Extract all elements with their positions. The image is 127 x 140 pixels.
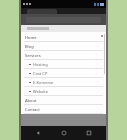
button[interactable]: Blog [21,42,106,51]
staticText: Blog [25,44,34,49]
button[interactable]: Recents [80,126,98,140]
button[interactable]: Back [29,126,47,140]
staticText: About [25,98,37,103]
button[interactable]: Home [55,126,73,140]
staticText: Contact [25,107,40,112]
staticText: Services [25,53,41,58]
button[interactable]: Home [21,32,106,42]
staticText: Cost CP [33,71,48,76]
button[interactable]: Services [21,51,106,60]
staticText: E-Komerse [33,80,54,85]
staticText: Hosting [33,62,48,67]
button[interactable]: Website [21,87,106,96]
button[interactable]: Cost CP [21,69,106,78]
button[interactable]: Contact [21,105,106,114]
staticText: Website [33,89,49,94]
button[interactable]: E-Komerse [21,78,106,87]
staticText: Home [25,35,37,40]
button[interactable]: About [21,96,106,105]
button[interactable]: Hosting [21,60,106,69]
